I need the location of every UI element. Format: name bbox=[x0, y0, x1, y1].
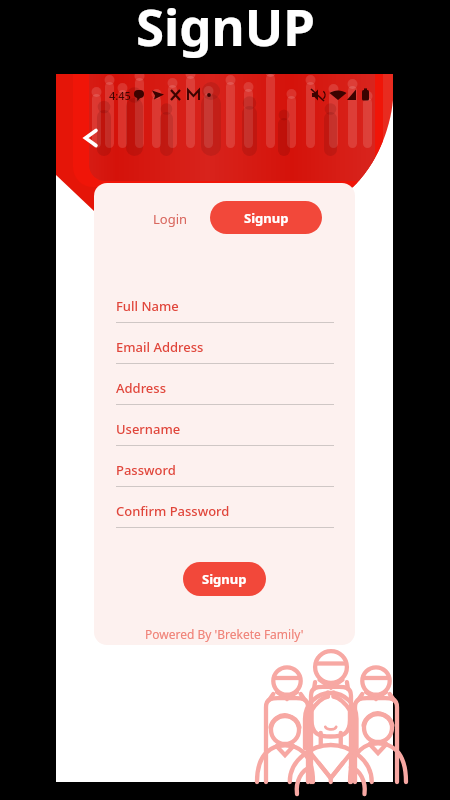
button[interactable]: Signup bbox=[210, 201, 322, 234]
staticText: Email Address bbox=[116, 338, 204, 356]
staticText: 4:45 bbox=[109, 88, 131, 103]
button[interactable]: Signup bbox=[183, 562, 266, 596]
staticText: Signup bbox=[202, 570, 247, 588]
staticText: Powered By 'Brekete Family' bbox=[145, 626, 304, 642]
staticText: Login bbox=[153, 210, 188, 228]
staticText: Signup bbox=[244, 209, 289, 227]
staticText: Confirm Password bbox=[116, 502, 230, 520]
staticText: Address bbox=[116, 379, 166, 397]
button[interactable]: Back bbox=[73, 121, 106, 154]
staticText: SignUP bbox=[136, 0, 315, 60]
button[interactable]: Login bbox=[144, 202, 197, 236]
staticText: Full Name bbox=[116, 297, 179, 315]
staticText: Username bbox=[116, 420, 181, 438]
staticText: Password bbox=[116, 461, 176, 479]
